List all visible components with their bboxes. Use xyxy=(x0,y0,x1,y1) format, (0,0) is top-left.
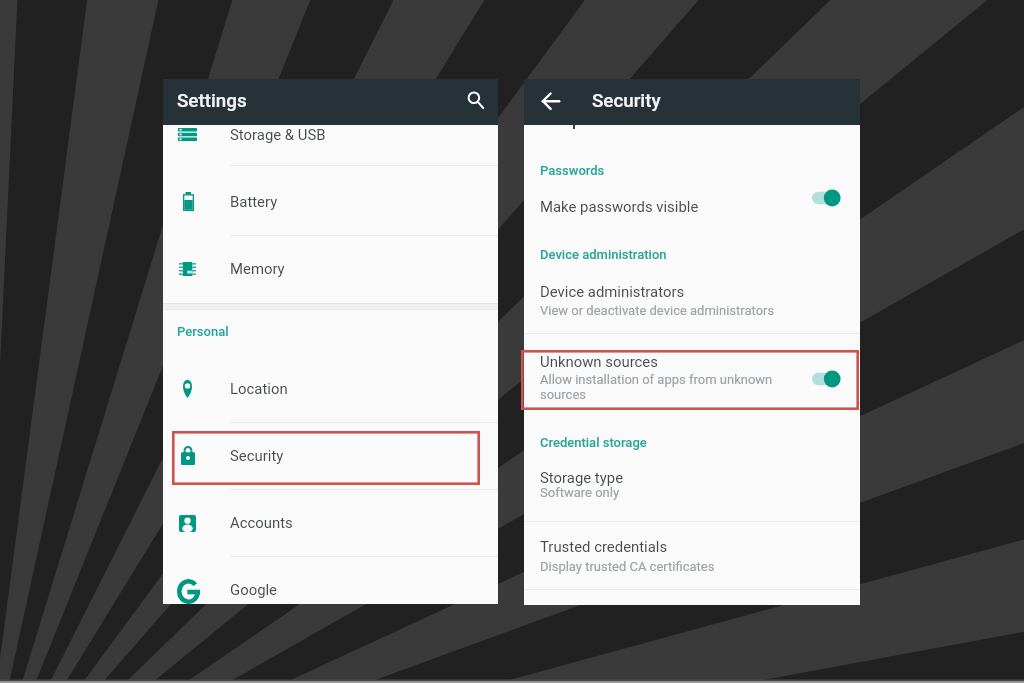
staticText: Display trusted CA certificates xyxy=(540,559,715,574)
staticText: sources xyxy=(540,387,586,402)
staticText: Accounts xyxy=(230,514,293,531)
staticText: Security xyxy=(230,447,284,464)
staticText: Passwords xyxy=(540,163,605,178)
button[interactable] xyxy=(163,489,498,555)
staticText: View or deactivate device administrators xyxy=(540,303,775,318)
staticText: Settings xyxy=(177,90,247,112)
button[interactable] xyxy=(163,165,498,232)
staticText: Trusted credentials xyxy=(540,538,668,555)
button[interactable] xyxy=(524,462,860,507)
staticText: Device administrators xyxy=(540,283,685,300)
staticText: Credential storage xyxy=(540,435,647,450)
staticText: Make passwords visible xyxy=(540,198,699,215)
button[interactable] xyxy=(163,235,498,301)
button[interactable] xyxy=(524,531,860,576)
staticText: Allow installation of apps from unknown xyxy=(540,372,773,387)
button[interactable] xyxy=(163,356,498,422)
staticText: Storage & USB xyxy=(230,126,326,143)
button[interactable] xyxy=(524,276,860,321)
button[interactable]: Search xyxy=(461,86,487,112)
staticText: Security xyxy=(592,90,661,112)
button[interactable] xyxy=(163,422,498,488)
button[interactable] xyxy=(524,347,860,405)
staticText: Personal xyxy=(177,324,229,339)
staticText: Device administration xyxy=(540,247,667,262)
staticText: Software only xyxy=(540,485,620,500)
button[interactable] xyxy=(163,556,498,604)
button[interactable]: Toggle xyxy=(810,187,842,209)
button[interactable]: Back xyxy=(536,89,562,115)
staticText: Location xyxy=(230,380,288,397)
button[interactable]: Toggle xyxy=(810,368,842,390)
button[interactable] xyxy=(163,117,498,165)
staticText: Google xyxy=(230,581,278,598)
staticText: Battery xyxy=(230,193,278,210)
staticText: Memory xyxy=(230,260,285,277)
staticText: Unknown sources xyxy=(540,353,658,370)
button[interactable] xyxy=(524,190,860,220)
staticText: Storage type xyxy=(540,469,624,486)
